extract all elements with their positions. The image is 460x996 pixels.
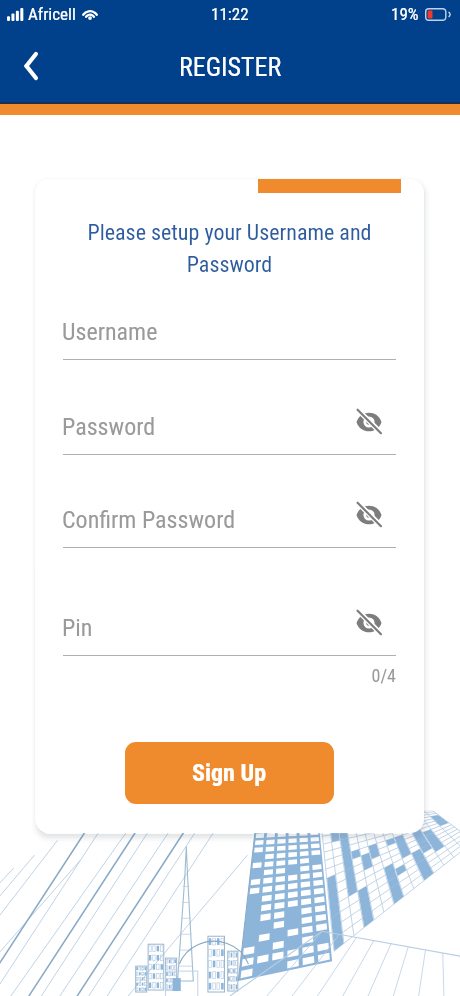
- button[interactable]: Toggle visibility: [352, 405, 386, 439]
- staticText: 11:22: [211, 4, 249, 24]
- staticText: Africell: [28, 4, 76, 24]
- staticText: Password: [62, 413, 156, 441]
- staticText: REGISTER: [179, 52, 282, 82]
- button[interactable]: Toggle visibility: [352, 606, 386, 640]
- button[interactable]: Back: [11, 45, 53, 87]
- staticText: Please setup your Username and Password: [57, 220, 402, 278]
- staticText: Sign Up: [192, 759, 267, 787]
- staticText: Username: [62, 318, 158, 346]
- staticText: 0/4: [35, 665, 396, 686]
- button[interactable]: Toggle visibility: [352, 498, 386, 532]
- staticText: Confirm Password: [62, 506, 236, 534]
- staticText: 19%: [391, 4, 419, 24]
- button[interactable]: Sign Up: [125, 742, 334, 804]
- staticText: Pin: [62, 614, 93, 642]
